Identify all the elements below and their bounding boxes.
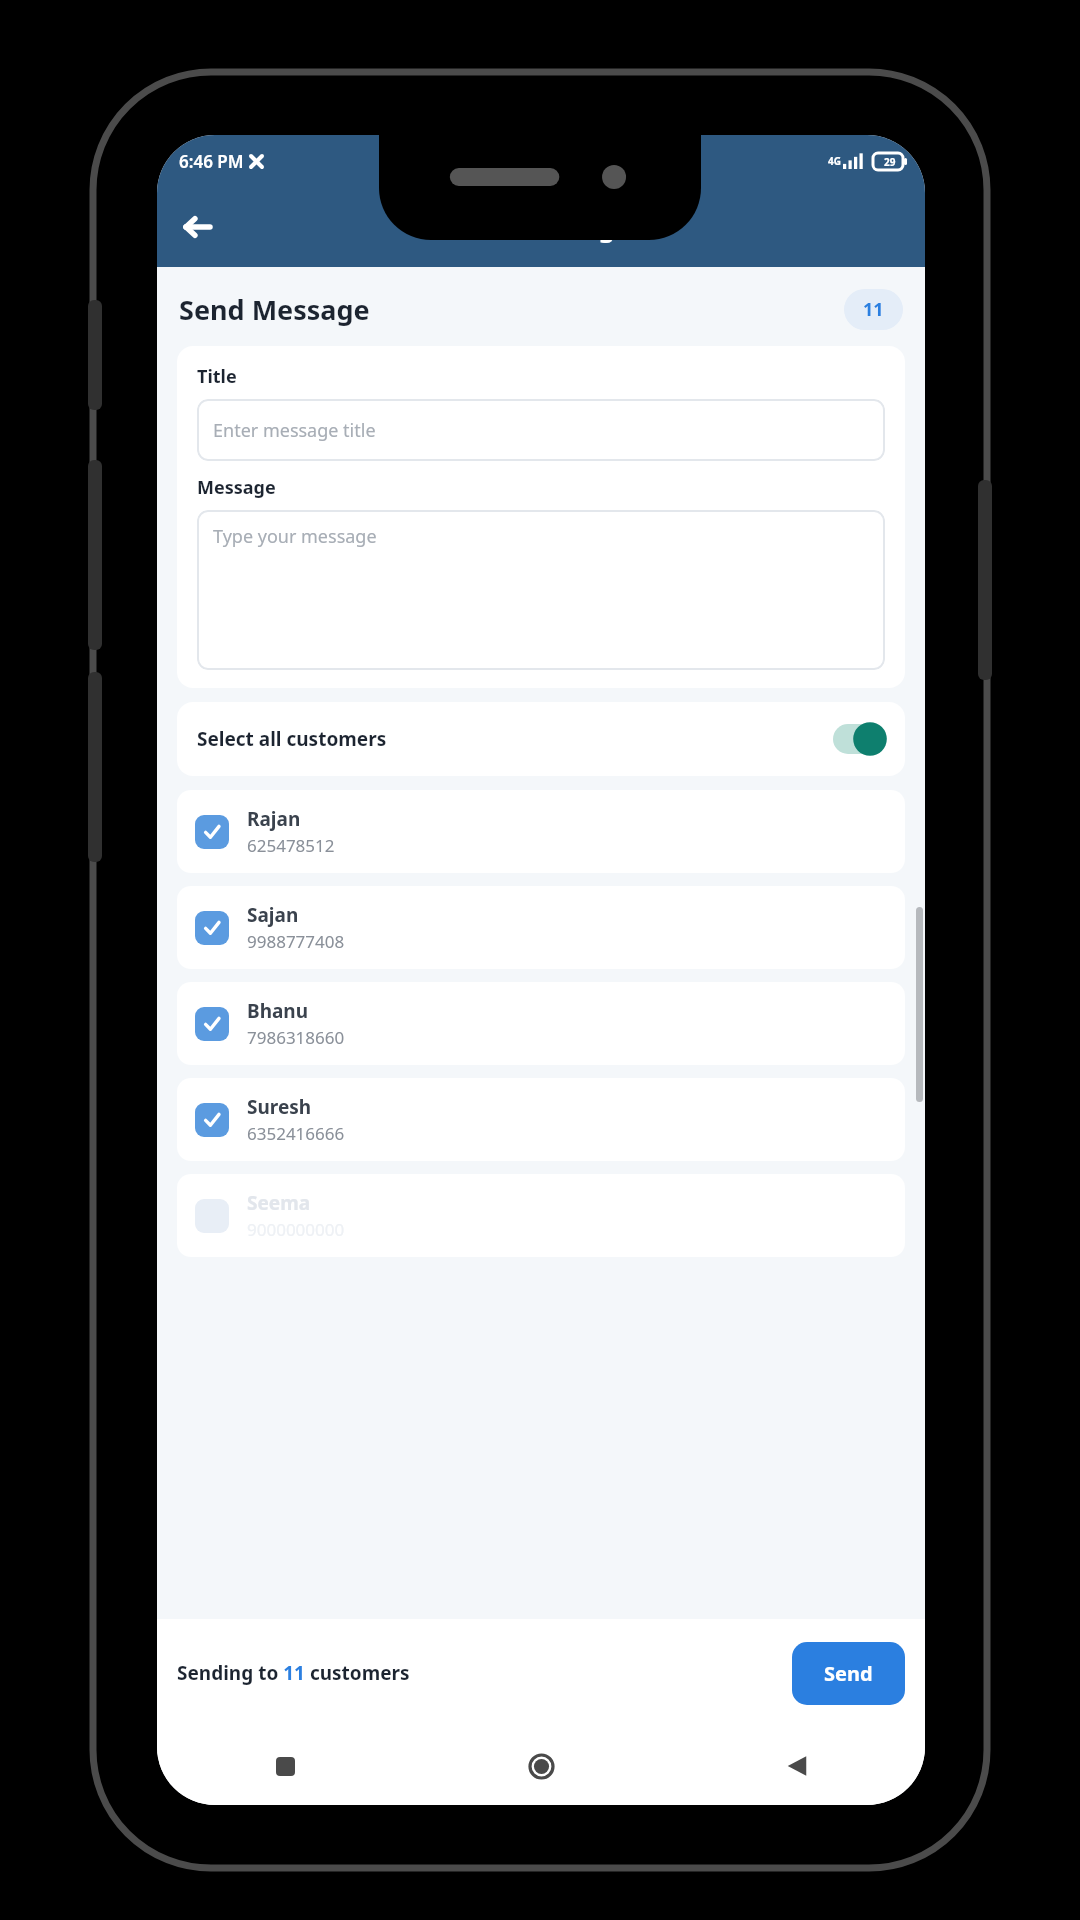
staticText: 7986318660 <box>247 1026 345 1049</box>
staticText: Send Message <box>453 210 630 244</box>
button[interactable]: Recent apps <box>157 1727 413 1805</box>
button[interactable]: Selected <box>177 886 905 969</box>
staticText: Rajan <box>247 806 301 832</box>
staticText: Seema <box>247 1190 311 1216</box>
staticText: Send <box>824 1660 873 1687</box>
button[interactable]: Selected <box>177 982 905 1065</box>
button[interactable]: Home <box>413 1727 669 1805</box>
button[interactable]: Back <box>669 1727 925 1805</box>
button[interactable]: Seema <box>177 1174 905 1257</box>
staticText: Enter message title <box>213 418 376 443</box>
staticText: 4G <box>828 154 841 168</box>
staticText: Sending to 11 customers <box>177 1660 410 1686</box>
button[interactable]: Selected <box>195 815 229 849</box>
button[interactable]: Selected <box>195 1103 229 1137</box>
staticText: 6:46 PM <box>179 150 244 173</box>
button[interactable]: Select all customers <box>177 702 905 776</box>
button[interactable]: Selected <box>177 790 905 873</box>
staticText: Message <box>197 475 276 500</box>
staticText: Bhanu <box>247 998 309 1024</box>
staticText: Title <box>197 364 237 389</box>
button[interactable]: Selected <box>195 911 229 945</box>
button[interactable]: Enter message title <box>197 399 885 461</box>
button[interactable]: 11 <box>844 289 903 330</box>
staticText: 9988777408 <box>247 930 345 953</box>
button[interactable]: Selected <box>195 1007 229 1041</box>
staticText: 625478512 <box>247 834 335 857</box>
staticText: 11 <box>863 297 884 322</box>
button[interactable]: Send <box>792 1642 905 1705</box>
staticText: Select all customers <box>197 726 387 752</box>
staticText: 6352416666 <box>247 1122 345 1145</box>
staticText: Suresh <box>247 1094 312 1120</box>
button[interactable]: Back <box>169 199 225 255</box>
staticText: Sajan <box>247 902 299 928</box>
button[interactable]: Selected <box>177 1078 905 1161</box>
staticText: 9000000000 <box>247 1218 345 1241</box>
staticText: Send Message <box>179 291 370 328</box>
staticText: Type your message <box>213 524 377 549</box>
staticText: 29 <box>884 155 896 169</box>
button[interactable]: Type your message <box>197 510 885 670</box>
